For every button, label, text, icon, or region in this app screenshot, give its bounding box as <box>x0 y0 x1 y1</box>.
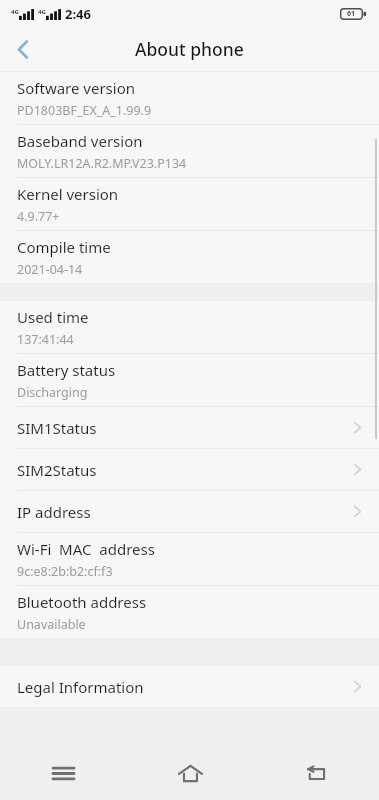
staticText: Wi-Fi MAC address <box>17 539 155 559</box>
button[interactable]: Back <box>253 746 379 800</box>
staticText: 4G <box>11 8 19 16</box>
staticText: 4.9.77+ <box>17 208 60 225</box>
button[interactable]: Legal Information <box>0 666 379 707</box>
button[interactable]: IP address <box>0 491 379 533</box>
button[interactable]: Compile time <box>0 231 379 283</box>
staticText: Unavailable <box>17 616 86 633</box>
staticText: Baseband version <box>17 131 143 151</box>
staticText: 137:41:44 <box>17 331 74 348</box>
staticText: MOLY.LR12A.R2.MP.V23.P134 <box>17 155 187 172</box>
staticText: 2021-04-14 <box>17 261 83 278</box>
button[interactable]: Back <box>0 27 46 71</box>
staticText: Discharging <box>17 384 88 401</box>
button[interactable]: SIM2Status <box>0 449 379 491</box>
button[interactable]: Battery status <box>0 354 379 407</box>
button[interactable]: Home <box>127 746 253 800</box>
button[interactable]: Bluetooth address <box>0 586 379 638</box>
staticText: Compile time <box>17 237 111 257</box>
staticText: Used time <box>17 307 89 327</box>
staticText: SIM2Status <box>17 460 353 480</box>
staticText: About phone <box>135 37 244 61</box>
button[interactable]: Baseband version <box>0 125 379 178</box>
staticText: 61 <box>347 9 356 19</box>
button[interactable]: Recent apps <box>0 746 127 800</box>
staticText: IP address <box>17 502 353 522</box>
button[interactable]: Wi-Fi MAC address <box>0 533 379 586</box>
button[interactable]: Kernel version <box>0 178 379 231</box>
staticText: 4G <box>38 8 46 16</box>
staticText: 9c:e8:2b:b2:cf:f3 <box>17 563 113 580</box>
button[interactable]: Used time <box>0 301 379 354</box>
staticText: Battery status <box>17 360 116 380</box>
staticText: Bluetooth address <box>17 592 147 612</box>
staticText: Legal Information <box>17 677 353 697</box>
staticText: Kernel version <box>17 184 119 204</box>
staticText: Software version <box>17 78 136 98</box>
staticText: 2:46 <box>65 5 91 23</box>
staticText: PD1803BF_EX_A_1.99.9 <box>17 102 152 119</box>
button[interactable]: SIM1Status <box>0 407 379 449</box>
staticText: SIM1Status <box>17 418 353 438</box>
button[interactable]: Software version <box>0 72 379 125</box>
